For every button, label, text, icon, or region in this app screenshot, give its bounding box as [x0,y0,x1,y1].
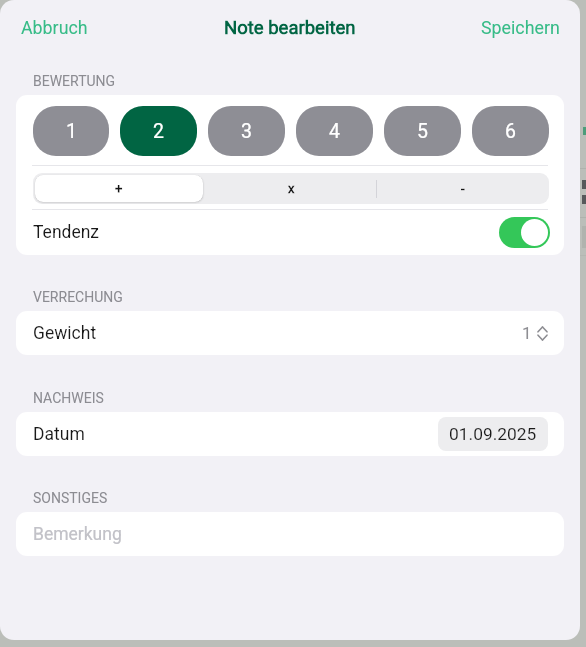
other: Gewicht ändern [538,327,547,340]
button[interactable]: Bemerkung [16,512,564,556]
staticText: x [288,181,295,196]
button[interactable]: - [377,173,549,204]
button[interactable]: x [205,173,377,204]
staticText: BEWERTUNG [33,73,116,89]
staticText: 1 [522,323,532,343]
staticText: SONSTIGES [33,490,108,506]
button[interactable]: Abbruch [0,9,102,46]
button[interactable]: 3 [208,106,285,156]
button[interactable]: Gewicht [16,311,564,355]
staticText: + [115,181,123,196]
staticText: VERRECHUNG [33,289,123,305]
button[interactable]: Tendenz umschalten [499,217,550,248]
staticText: Bemerkung [33,524,122,545]
staticText: NACHWEIS [33,390,104,406]
staticText: Datum [33,424,85,445]
button[interactable]: 5 [384,106,461,156]
button[interactable]: Speichern [467,9,580,46]
button[interactable]: 2 [120,106,197,156]
staticText: 2 [153,120,164,143]
staticText: Note bearbeiten [224,17,356,39]
staticText: 5 [417,120,428,143]
staticText: 4 [329,120,340,143]
staticText: 6 [505,120,516,143]
button[interactable]: + [35,175,203,202]
button[interactable]: 1 [33,106,109,156]
staticText: 01.09.2025 [449,424,537,444]
staticText: 1 [66,120,77,143]
staticText: 3 [241,120,252,143]
staticText: Tendenz [33,222,100,243]
staticText: Abbruch [21,17,88,38]
staticText: Speichern [481,17,560,38]
staticText: Gewicht [33,323,97,344]
button[interactable]: 01.09.2025 [438,417,548,451]
staticText: - [461,181,465,196]
button[interactable]: 4 [296,106,373,156]
button[interactable]: 6 [472,106,549,156]
